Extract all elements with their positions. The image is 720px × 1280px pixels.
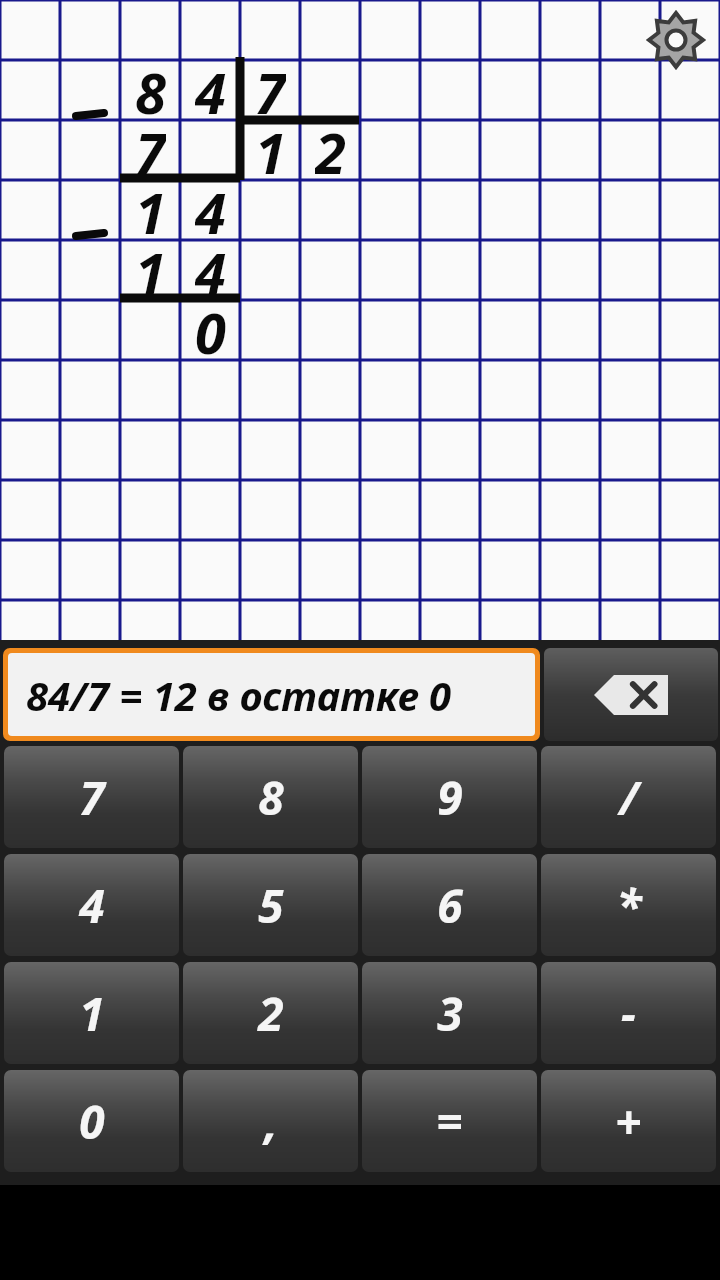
button[interactable]: *: [541, 854, 716, 956]
button[interactable]: +: [541, 1070, 716, 1172]
staticText: 4: [79, 874, 105, 937]
button[interactable]: 0: [4, 1070, 179, 1172]
staticText: 4: [195, 54, 226, 126]
staticText: *: [616, 874, 642, 937]
button[interactable]: ,: [183, 1070, 358, 1172]
staticText: 1: [135, 174, 166, 246]
staticText: 5: [258, 874, 284, 937]
staticText: 3: [437, 982, 463, 1045]
button[interactable]: 6: [362, 854, 537, 956]
staticText: 4: [195, 234, 226, 306]
button[interactable]: 9: [362, 746, 537, 848]
staticText: 6: [437, 874, 463, 937]
staticText: 8: [258, 766, 284, 829]
button[interactable]: 84/7 = 12 в остатке 0: [3, 648, 540, 741]
staticText: 2: [258, 982, 284, 1045]
button[interactable]: 8: [183, 746, 358, 848]
staticText: 9: [437, 766, 463, 829]
button[interactable]: 7: [4, 746, 179, 848]
staticText: 0: [79, 1090, 105, 1153]
staticText: +: [615, 1090, 642, 1153]
staticText: 1: [135, 234, 166, 306]
button[interactable]: -: [541, 962, 716, 1064]
button[interactable]: 2: [183, 962, 358, 1064]
staticText: 8: [135, 54, 166, 126]
button[interactable]: 3: [362, 962, 537, 1064]
staticText: 1: [79, 982, 105, 1045]
staticText: 7: [79, 766, 105, 829]
staticText: ,: [264, 1090, 278, 1153]
button[interactable]: 1: [4, 962, 179, 1064]
staticText: 4: [195, 174, 226, 246]
staticText: 2: [315, 114, 346, 186]
staticText: 1: [255, 114, 286, 186]
button[interactable]: =: [362, 1070, 537, 1172]
button[interactable]: 5: [183, 854, 358, 956]
button[interactable]: /: [541, 746, 716, 848]
button[interactable]: 4: [4, 854, 179, 956]
staticText: -: [621, 982, 636, 1045]
staticText: =: [436, 1090, 463, 1153]
button[interactable]: Backspace: [544, 648, 718, 741]
staticText: 7: [135, 114, 166, 186]
staticText: /: [619, 766, 639, 829]
staticText: 0: [195, 294, 226, 366]
staticText: 84/7 = 12 в остатке 0: [26, 668, 452, 722]
staticText: 7: [255, 54, 286, 126]
